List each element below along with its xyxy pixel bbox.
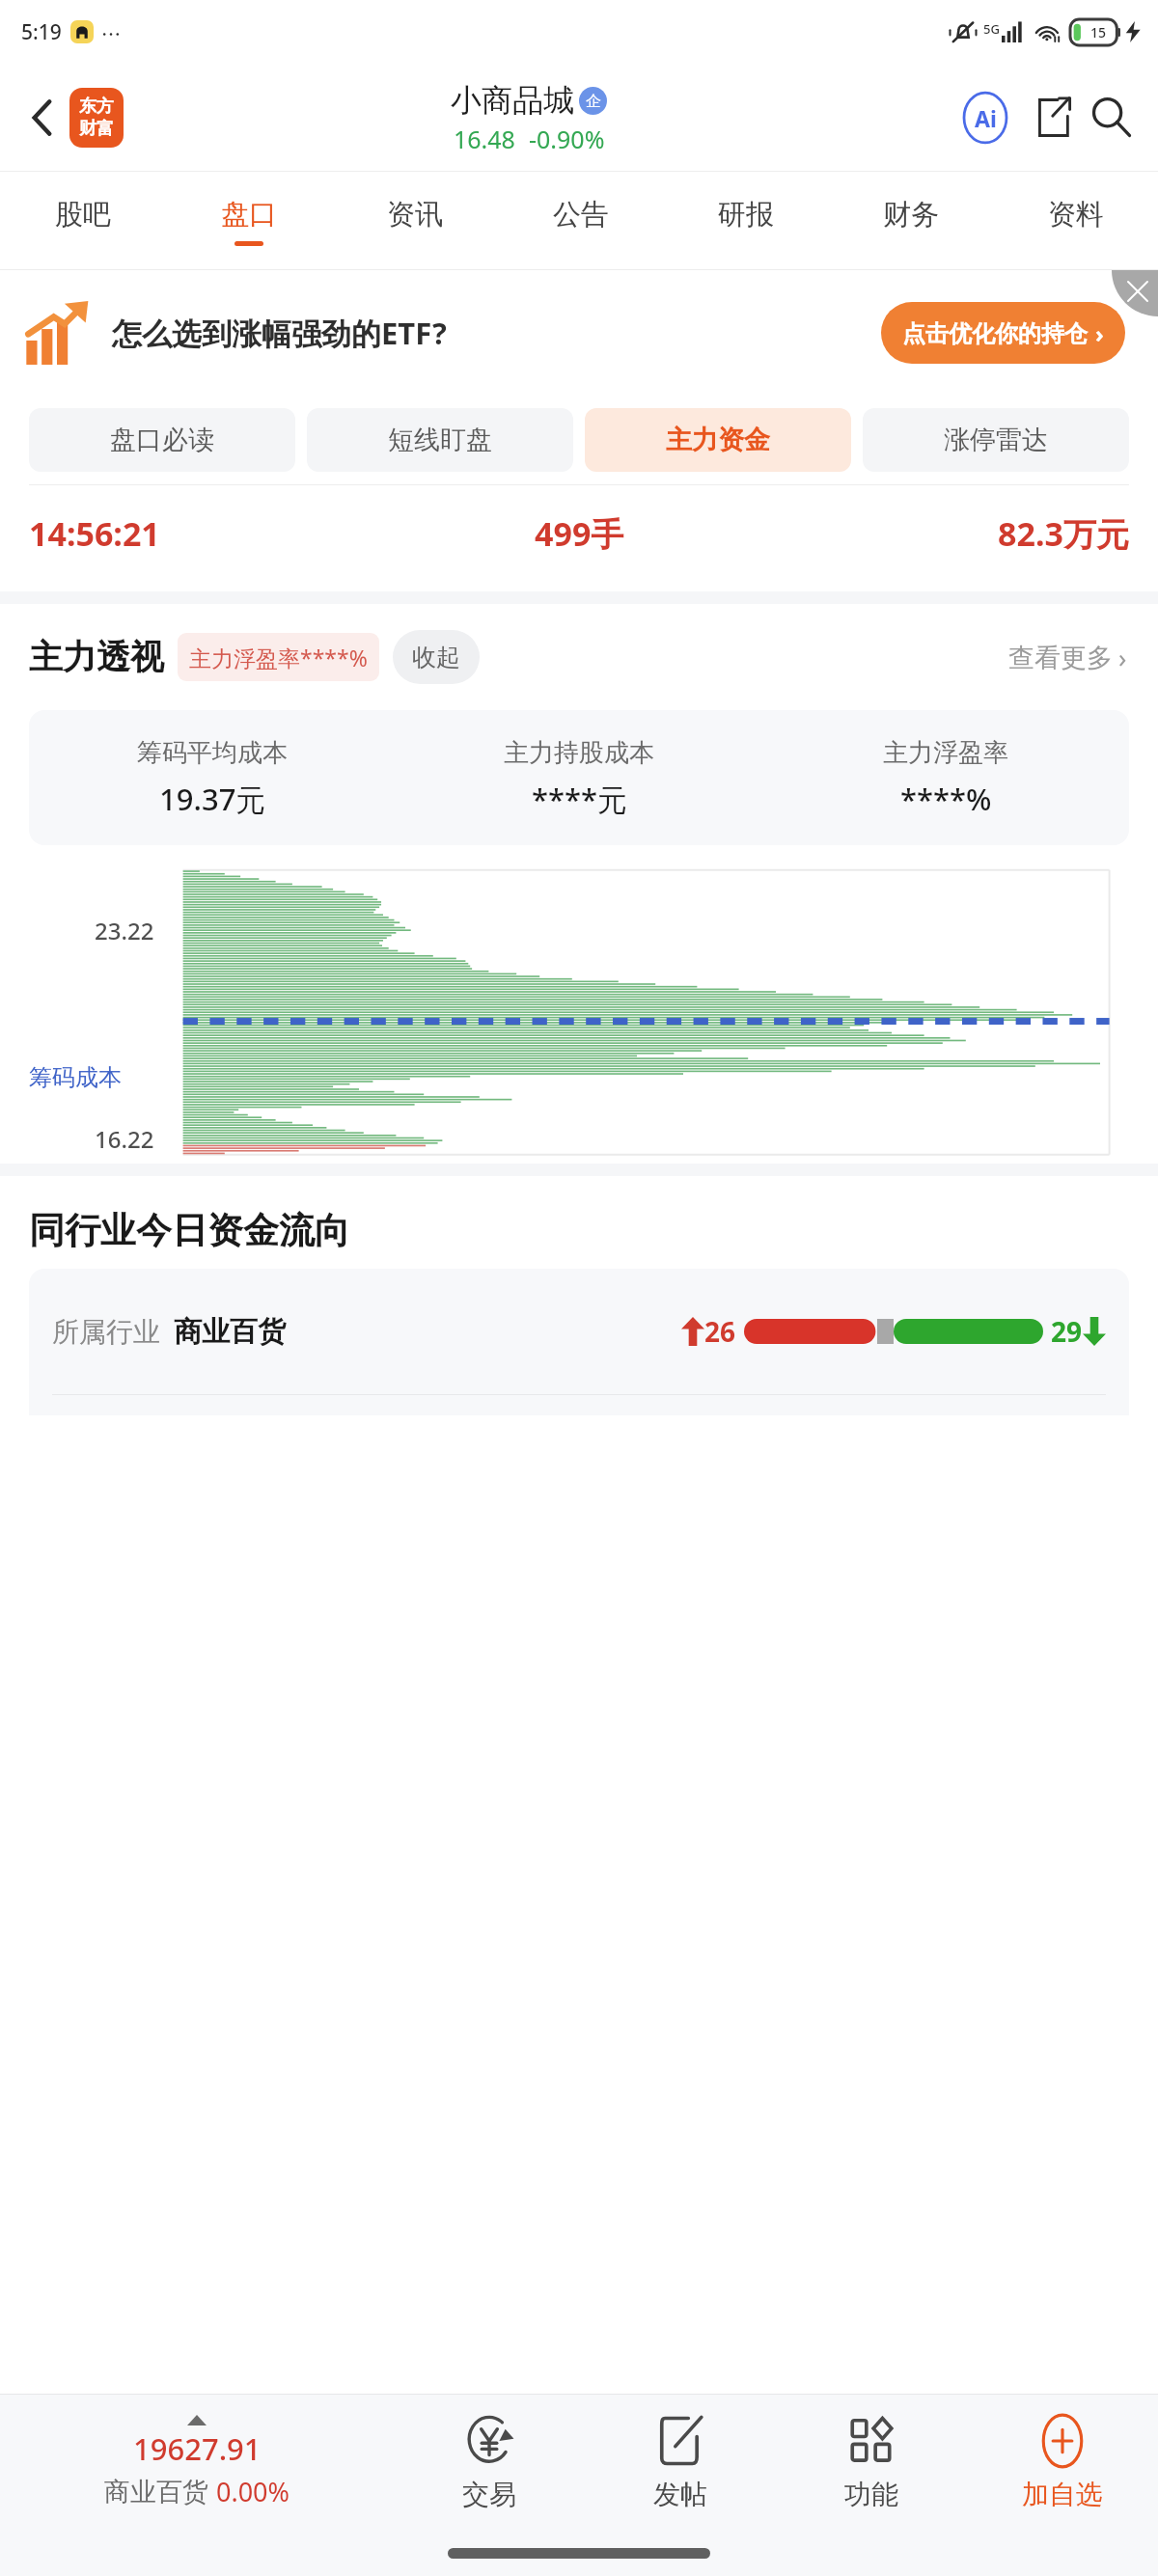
staticText: 主力资金 bbox=[666, 424, 770, 456]
staticText: 研报 bbox=[718, 197, 774, 233]
staticText: 发帖 bbox=[653, 2478, 707, 2511]
staticText: 15 bbox=[1090, 23, 1107, 41]
staticText: › bbox=[1095, 317, 1104, 349]
staticText: 19627.91 bbox=[133, 2428, 262, 2469]
staticText: 盘口 bbox=[221, 197, 277, 233]
staticText: 商业百货 bbox=[174, 1314, 286, 1350]
staticText: 资料 bbox=[1048, 197, 1104, 233]
staticText: 主力浮盈率****% bbox=[189, 643, 368, 672]
button[interactable]: 主力资金 bbox=[585, 408, 851, 472]
staticText: 29 bbox=[1051, 1313, 1083, 1350]
staticText: 交易 bbox=[462, 2478, 516, 2511]
staticText: 0.00% bbox=[216, 2474, 290, 2509]
staticText: 筹码成本 bbox=[29, 1063, 122, 1092]
staticText: 16.48 bbox=[454, 123, 515, 155]
staticText: 所属行业 bbox=[52, 1315, 160, 1349]
button[interactable]: 短线盯盘 bbox=[307, 408, 573, 472]
staticText: 涨停雷达 bbox=[944, 424, 1048, 456]
button[interactable]: 盘口必读 bbox=[29, 408, 295, 472]
button[interactable]: 盘口 bbox=[166, 172, 332, 270]
button[interactable]: East Money home bbox=[69, 88, 124, 148]
staticText: -0.90% bbox=[529, 123, 605, 155]
staticText: 企 bbox=[586, 92, 601, 111]
staticText: 财务 bbox=[883, 197, 939, 233]
staticText: 筹码平均成本 bbox=[137, 737, 288, 769]
button[interactable]: 股吧 bbox=[0, 172, 166, 270]
staticText: 同行业今日资金流向 bbox=[29, 1208, 350, 1253]
staticText: 5:19 bbox=[21, 18, 62, 46]
button[interactable]: 收起 bbox=[393, 630, 480, 684]
staticText: ****元 bbox=[532, 779, 627, 819]
staticText: 5G bbox=[983, 20, 1000, 38]
button[interactable]: 怎么选到涨幅强劲的ETF? bbox=[0, 270, 1158, 396]
staticText: 小商品城 bbox=[451, 81, 574, 120]
staticText: 16.22 bbox=[95, 1123, 154, 1155]
staticText: 短线盯盘 bbox=[388, 424, 492, 456]
button[interactable]: 发帖 bbox=[585, 2395, 776, 2530]
staticText: 股吧 bbox=[55, 197, 111, 233]
button[interactable]: 查看更多 bbox=[1003, 634, 1133, 681]
staticText: 收起 bbox=[412, 643, 460, 672]
staticText: ****% bbox=[900, 779, 992, 819]
button[interactable]: 功能 bbox=[776, 2395, 967, 2530]
button[interactable]: 所属行业 bbox=[29, 1269, 1129, 1394]
button[interactable]: 点击优化你的持仓 bbox=[881, 302, 1125, 364]
button[interactable]: 交易 bbox=[394, 2395, 585, 2530]
staticText: Ai bbox=[975, 103, 997, 133]
button[interactable]: 19627.91 bbox=[0, 2395, 394, 2530]
staticText: 主力持股成本 bbox=[504, 737, 654, 769]
button[interactable]: 研报 bbox=[663, 172, 828, 270]
staticText: 26 bbox=[704, 1313, 736, 1350]
staticText: 财富 bbox=[79, 118, 114, 140]
staticText: 14:56:21 bbox=[29, 511, 160, 556]
staticText: 主力浮盈率 bbox=[883, 737, 1008, 769]
button[interactable]: 公告 bbox=[498, 172, 663, 270]
staticText: 公告 bbox=[553, 197, 609, 233]
staticText: 盘口必读 bbox=[110, 424, 214, 456]
button[interactable]: AI assistant bbox=[957, 90, 1013, 146]
button[interactable]: Share bbox=[1025, 91, 1079, 145]
staticText: › bbox=[1118, 640, 1127, 675]
staticText: 主力透视 bbox=[29, 636, 164, 678]
button[interactable]: Back bbox=[15, 91, 69, 145]
button[interactable]: 财务 bbox=[828, 172, 993, 270]
button[interactable]: 资讯 bbox=[332, 172, 498, 270]
staticText: 23.22 bbox=[95, 915, 154, 946]
staticText: 19.37元 bbox=[159, 779, 266, 819]
staticText: 怎么选到涨幅强劲的ETF? bbox=[112, 313, 447, 353]
staticText: 商业百货 bbox=[104, 2476, 208, 2508]
staticText: 东方 bbox=[79, 96, 114, 118]
button[interactable]: Close ad bbox=[1112, 270, 1158, 316]
staticText: 查看更多 bbox=[1008, 642, 1113, 674]
staticText: 点击优化你的持仓 bbox=[902, 319, 1088, 348]
button[interactable]: 涨停雷达 bbox=[863, 408, 1129, 472]
button[interactable]: 加自选 bbox=[967, 2395, 1158, 2530]
staticText: 功能 bbox=[844, 2478, 898, 2511]
staticText: 499手 bbox=[535, 511, 624, 556]
staticText: 82.3万元 bbox=[998, 511, 1129, 556]
button[interactable]: 资料 bbox=[993, 172, 1158, 270]
button[interactable]: Search bbox=[1085, 91, 1139, 145]
staticText: 加自选 bbox=[1022, 2478, 1103, 2511]
staticText: 资讯 bbox=[387, 197, 443, 233]
